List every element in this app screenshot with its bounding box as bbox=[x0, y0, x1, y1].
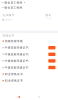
staticText: 一级会员工程师 bbox=[1, 6, 22, 9]
staticText: 初级技能等级 bbox=[5, 39, 23, 43]
button[interactable]: 中级技能等级证书 bbox=[0, 58, 58, 64]
staticText: 中级技能等级证书 bbox=[5, 66, 29, 69]
button[interactable]: 查看证书 bbox=[48, 59, 55, 63]
staticText: 签名 bbox=[45, 13, 51, 17]
staticText: 中级技能等级证书 bbox=[5, 59, 29, 63]
button[interactable]: 查看证书 bbox=[48, 66, 55, 69]
staticText: 中级技能等级证书 bbox=[5, 46, 29, 49]
staticText: 技能证书 bbox=[2, 34, 14, 37]
staticText: 20240001 bbox=[4, 19, 12, 21]
button[interactable]: 查看证书 bbox=[48, 46, 55, 49]
button[interactable]: 中级技能等级证书 bbox=[0, 64, 58, 71]
button[interactable]: 职业资格证书 bbox=[0, 77, 58, 84]
staticText: 证书编号 bbox=[2, 13, 14, 17]
staticText: 中级技能等级证书 bbox=[5, 53, 29, 56]
staticText: 一级会员工程师 bbox=[1, 1, 22, 4]
button[interactable]: 查看证书 bbox=[48, 53, 55, 56]
button[interactable]: 初级技能等级 bbox=[0, 38, 58, 44]
button[interactable]: 中级技能等级证书 bbox=[0, 51, 58, 58]
button[interactable]: 职业资格证书 bbox=[0, 71, 58, 77]
button[interactable]: 中级技能等级证书 bbox=[0, 44, 58, 51]
staticText: 职业资格证书 bbox=[5, 72, 23, 76]
staticText: 职业资格证书 bbox=[5, 79, 23, 82]
staticText: 2024.06 bbox=[45, 17, 51, 19]
